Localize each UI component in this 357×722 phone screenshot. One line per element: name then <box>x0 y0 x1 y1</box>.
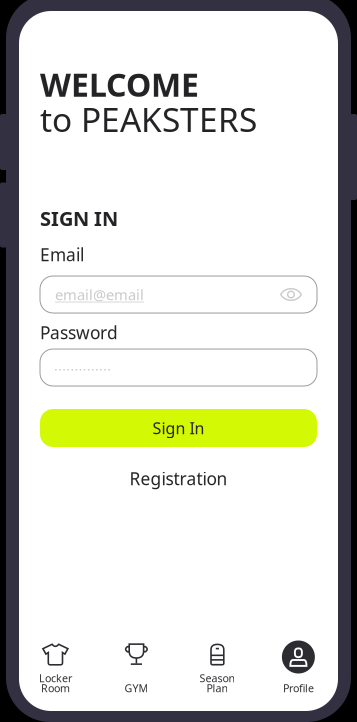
staticText: Plan <box>206 681 228 695</box>
button[interactable]: Sign In <box>40 409 317 447</box>
staticText: Profile <box>283 681 314 695</box>
button[interactable]: GYM <box>96 638 177 688</box>
button[interactable]: Locker Room <box>15 638 96 688</box>
staticText: to PEAKSTERS <box>40 97 257 141</box>
staticText: Room <box>41 681 70 695</box>
staticText: Password <box>40 321 118 344</box>
staticText: Registration <box>129 467 227 490</box>
staticText: Email <box>40 243 84 266</box>
button[interactable]: Show email <box>280 288 302 300</box>
staticText: GYM <box>124 681 148 695</box>
button[interactable]: Profile <box>258 638 339 688</box>
button[interactable]: Season Plan <box>177 638 258 688</box>
staticText: Locker <box>39 671 72 685</box>
staticText: WELCOME <box>40 63 199 105</box>
staticText: Sign In <box>152 417 204 439</box>
staticText: Season <box>199 671 235 685</box>
staticText: SIGN IN <box>40 205 118 232</box>
button[interactable]: Registration <box>40 467 317 485</box>
staticText: email@email <box>55 285 144 304</box>
